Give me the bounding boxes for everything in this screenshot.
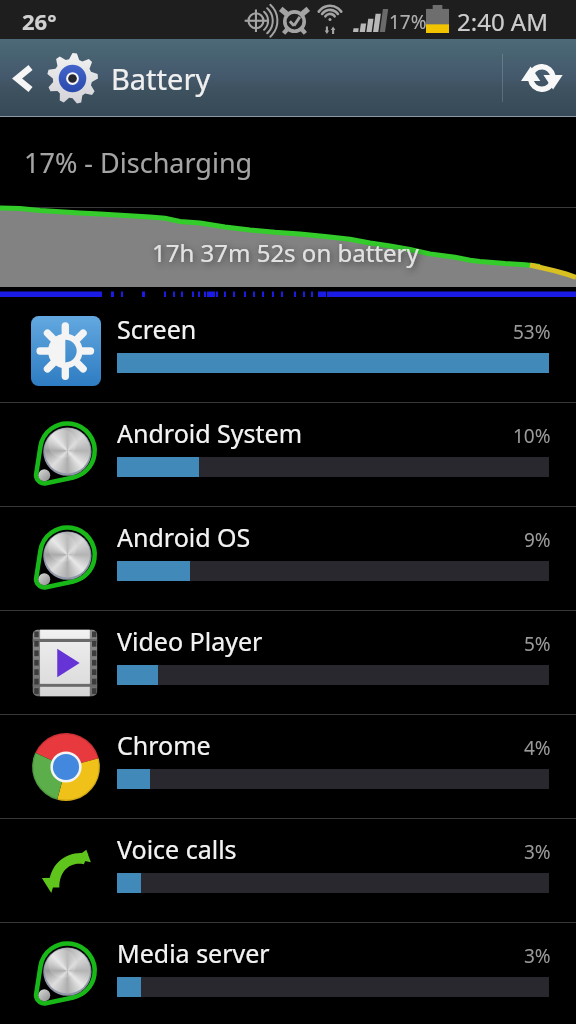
staticText: Voice calls (117, 832, 237, 866)
button[interactable]: Android System (0, 403, 576, 506)
button[interactable]: Voice calls (0, 819, 576, 922)
button[interactable]: Chrome (0, 715, 576, 818)
staticText: 3% (524, 943, 551, 969)
staticText: 17% (389, 9, 427, 35)
staticText: Screen (117, 312, 197, 346)
button[interactable]: Back (0, 39, 240, 117)
staticText: 2:40 AM (457, 5, 548, 38)
button[interactable]: Android OS (0, 507, 576, 610)
staticText: 53% (513, 319, 551, 345)
staticText: 4% (524, 735, 551, 761)
button[interactable]: Refresh (504, 39, 576, 117)
staticText: Chrome (117, 728, 211, 762)
staticText: 17h 37m 52s on battery (152, 236, 419, 269)
staticText: Android System (117, 416, 303, 450)
staticText: 5% (524, 631, 551, 657)
staticText: 26° (22, 6, 57, 36)
staticText: Video Player (117, 624, 263, 658)
other: Back (15, 66, 31, 91)
staticText: 10% (513, 423, 551, 449)
staticText: Battery (111, 59, 211, 98)
staticText: 9% (524, 527, 551, 553)
button[interactable]: Video Player (0, 611, 576, 714)
button[interactable]: Media server (0, 923, 576, 1024)
staticText: Media server (117, 936, 270, 970)
staticText: 3% (524, 839, 551, 865)
button[interactable]: Screen (0, 299, 576, 402)
staticText: 17% - Discharging (24, 144, 253, 181)
staticText: Android OS (117, 520, 251, 554)
